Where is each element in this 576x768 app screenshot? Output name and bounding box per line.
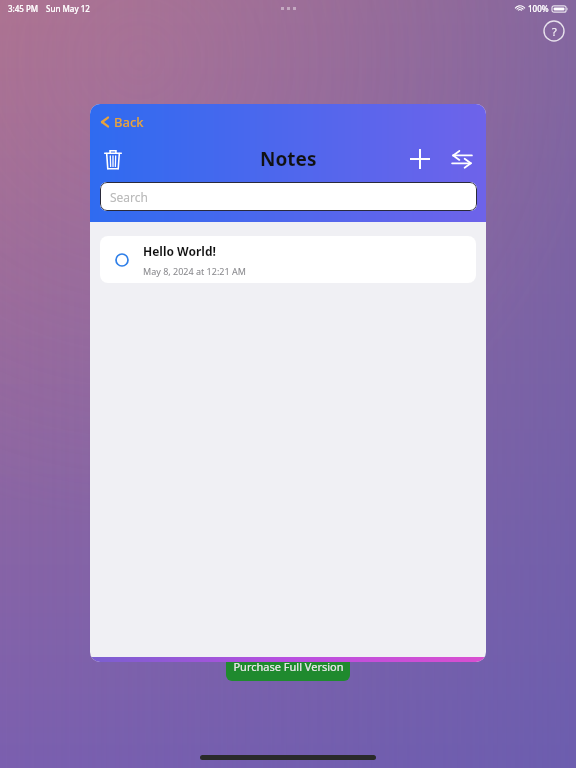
button[interactable]: Delete bbox=[95, 141, 131, 177]
button[interactable]: Hello World! bbox=[100, 236, 476, 283]
staticText: Purchase Full Version bbox=[233, 659, 344, 674]
button[interactable]: Purchase Full Version bbox=[226, 652, 350, 681]
button[interactable]: Search bbox=[100, 182, 477, 211]
button[interactable]: Add note bbox=[402, 141, 438, 177]
staticText: May 8, 2024 at 12:21 AM bbox=[143, 265, 246, 277]
button[interactable]: Transfer bbox=[444, 141, 480, 177]
staticText: Search bbox=[110, 189, 148, 205]
staticText: Sun May 12 bbox=[46, 3, 90, 14]
staticText: 100% bbox=[528, 3, 549, 14]
staticText: Notes bbox=[260, 146, 317, 172]
staticText: Back bbox=[114, 113, 144, 131]
button[interactable]: Help bbox=[543, 20, 565, 42]
staticText: Hello World! bbox=[143, 243, 216, 259]
button[interactable]: Back bbox=[96, 110, 148, 134]
staticText: ? bbox=[552, 24, 557, 39]
staticText: 3:45 PM bbox=[8, 3, 39, 14]
